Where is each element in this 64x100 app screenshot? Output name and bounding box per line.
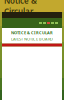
staticText: NOTICE & CIRCULAR: [11, 30, 53, 35]
staticText: LATEST NOTICE BOARD: [11, 36, 53, 42]
staticText: Notice & Circular: [4, 0, 37, 17]
